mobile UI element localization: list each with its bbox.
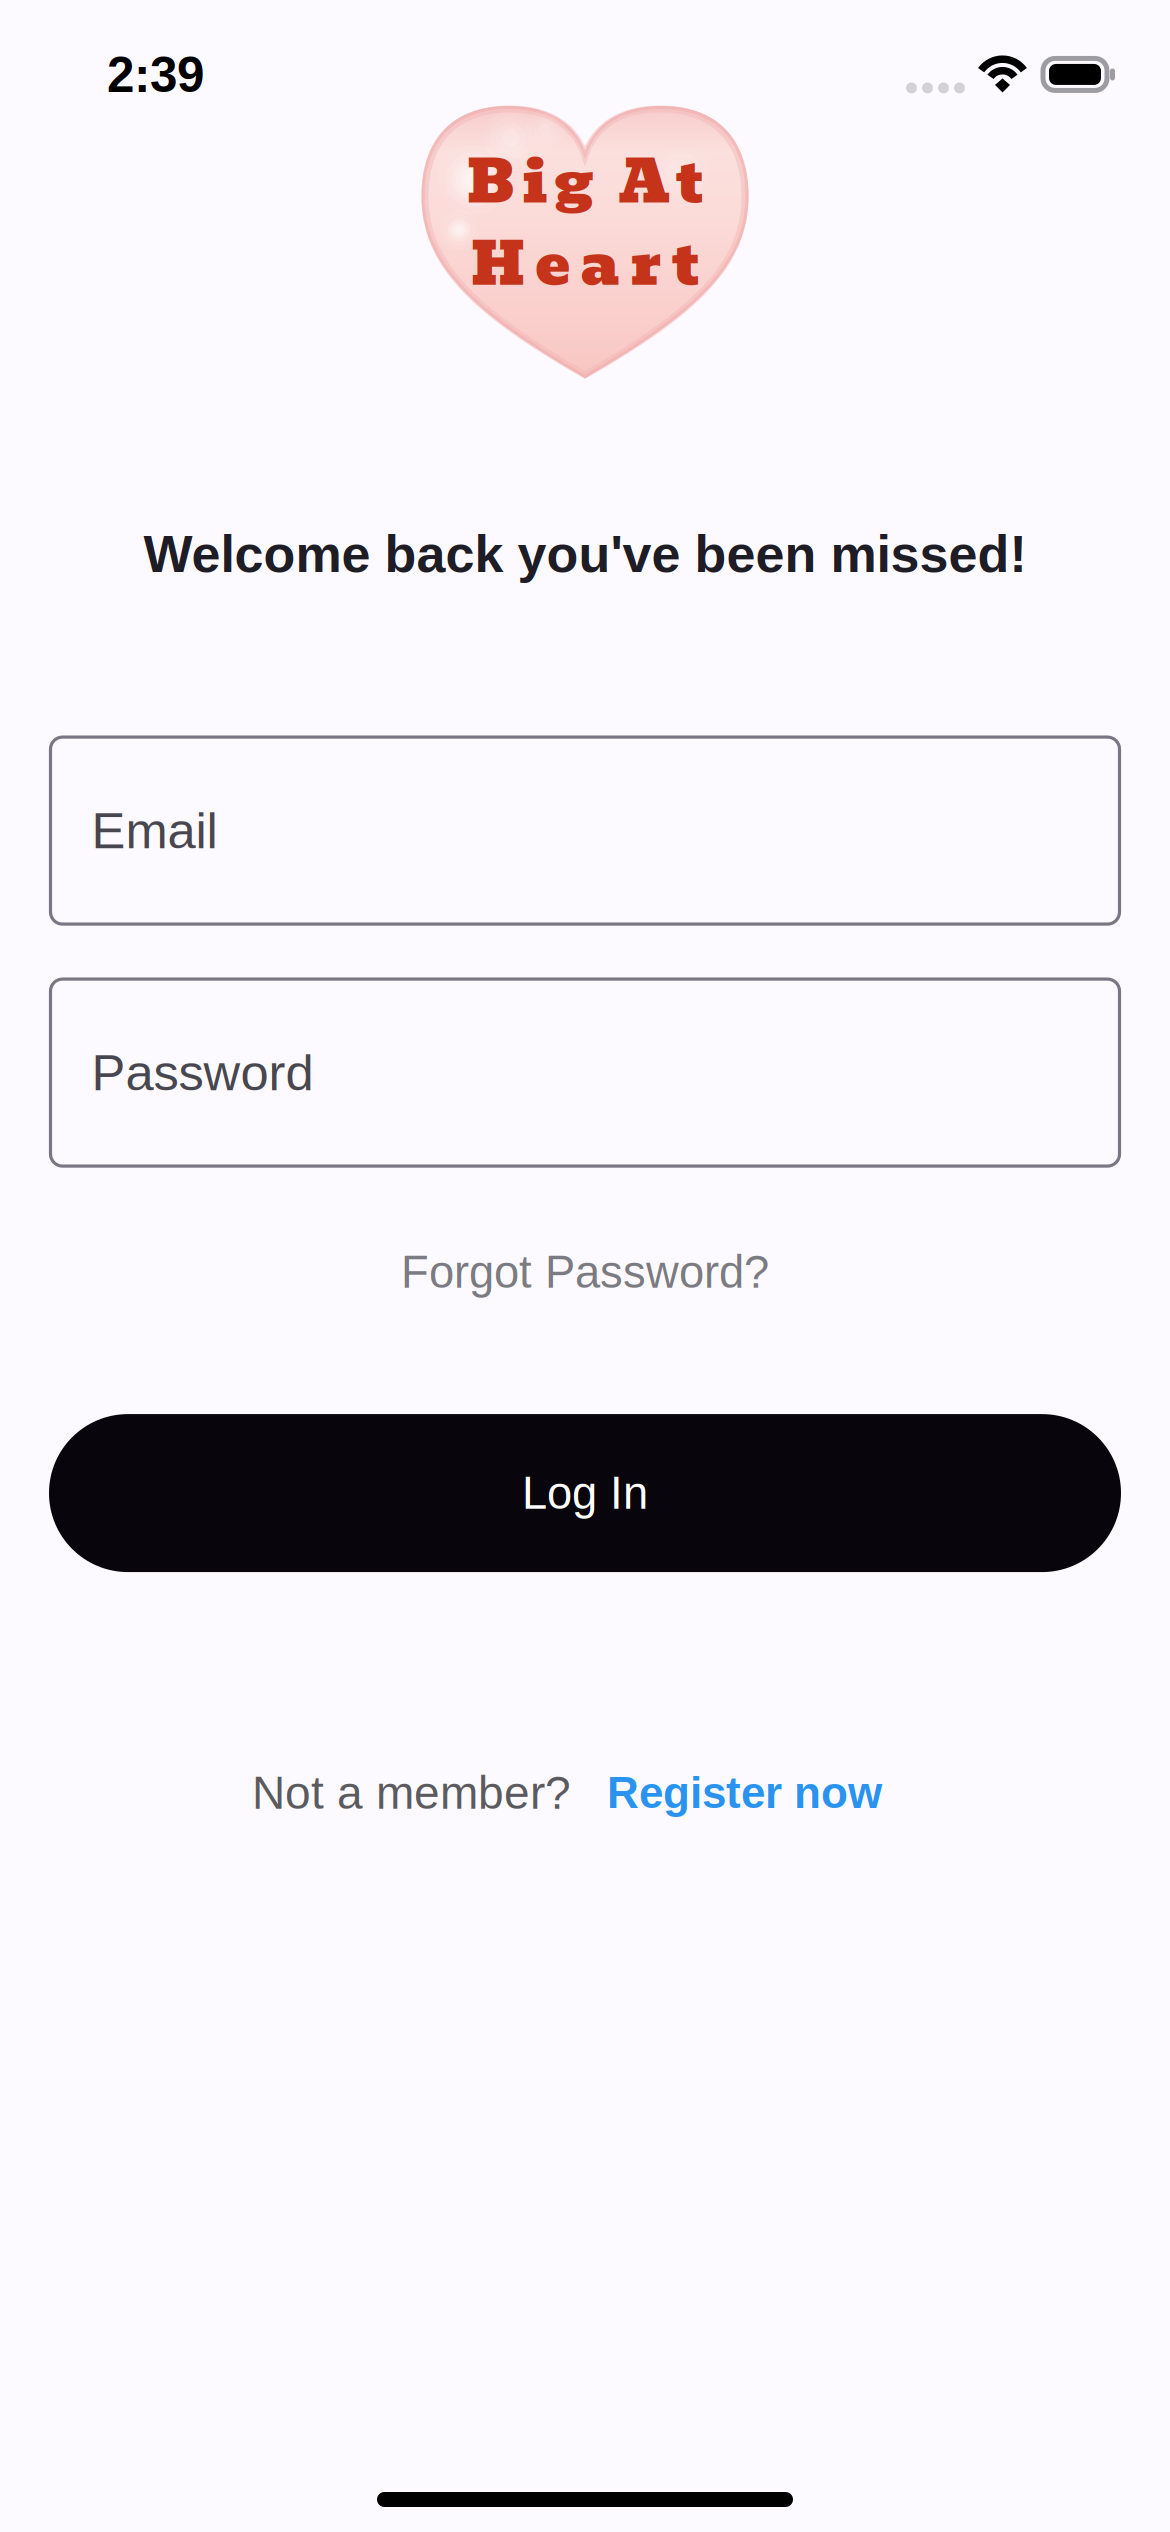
button[interactable]: Forgot Password? [375,1232,795,1312]
button[interactable]: Register now [607,1768,882,1817]
staticText: Password [91,1044,313,1101]
staticText: Heart [471,217,699,311]
staticText: Forgot Password? [401,1247,769,1297]
staticText: Big At [467,135,703,229]
staticText: Not a member? [252,1767,571,1818]
staticText: Log In [522,1468,648,1518]
button[interactable]: Log In [49,1414,1121,1572]
staticText: Register now [607,1768,882,1817]
staticText: Email [91,802,217,859]
staticText: 2:39 [107,47,204,102]
staticText: Welcome back you've been missed! [143,525,1026,583]
